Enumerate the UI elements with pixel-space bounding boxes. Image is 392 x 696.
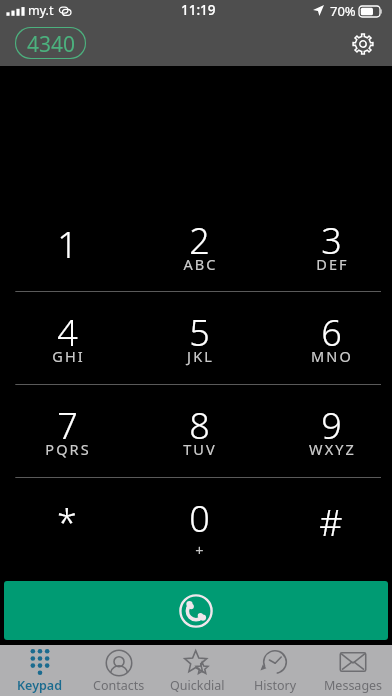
button[interactable]: 7 <box>0 384 132 477</box>
button[interactable]: 4340 <box>15 27 86 59</box>
staticText: 5 <box>189 308 210 357</box>
staticText: 6 <box>321 308 342 357</box>
staticText: 0 <box>189 494 210 543</box>
button[interactable]: 6 <box>264 291 392 384</box>
staticText: PQRS <box>45 439 91 459</box>
staticText: MNO <box>311 346 353 366</box>
staticText: DEF <box>316 254 349 274</box>
staticText: 7 <box>57 401 78 450</box>
staticText: Quickdial <box>170 677 225 694</box>
button[interactable]: Contacts <box>79 645 158 696</box>
button[interactable]: 2 <box>132 199 264 292</box>
button[interactable]: Call <box>4 581 388 640</box>
button[interactable]: Messages <box>314 645 392 696</box>
button[interactable]: Settings <box>345 26 381 62</box>
button[interactable]: 1 <box>0 199 132 292</box>
button[interactable]: Quickdial <box>158 645 236 696</box>
staticText: 9 <box>321 401 342 450</box>
staticText: Keypad <box>17 677 62 694</box>
staticText: 1 <box>57 220 78 269</box>
button[interactable]: 8 <box>132 384 264 477</box>
staticText: History <box>254 677 297 694</box>
staticText: 4340 <box>27 30 76 59</box>
staticText: 2 <box>189 216 210 265</box>
button[interactable]: * <box>0 477 132 570</box>
staticText: Messages <box>324 677 383 694</box>
staticText: 8 <box>189 401 210 450</box>
staticText: WXYZ <box>309 439 356 459</box>
staticText: ABC <box>183 254 218 274</box>
staticText: 11:19 <box>181 1 216 19</box>
staticText: 4 <box>57 308 78 357</box>
button[interactable]: 9 <box>264 384 392 477</box>
button[interactable]: 0 <box>132 477 264 570</box>
button[interactable]: 3 <box>264 199 392 292</box>
staticText: 70% <box>330 2 356 20</box>
staticText: 3 <box>321 216 342 265</box>
staticText: # <box>319 498 343 547</box>
staticText: + <box>195 540 206 560</box>
staticText: GHI <box>52 346 85 366</box>
button[interactable]: Keypad <box>0 645 79 696</box>
button[interactable]: History <box>236 645 314 696</box>
button[interactable]: # <box>264 477 392 570</box>
button[interactable]: 5 <box>132 291 264 384</box>
staticText: * <box>57 498 77 547</box>
staticText: Contacts <box>93 677 145 694</box>
staticText: JKL <box>187 346 214 366</box>
staticText: my.t <box>28 2 54 19</box>
button[interactable]: 4 <box>0 291 132 384</box>
staticText: TUV <box>183 439 217 459</box>
